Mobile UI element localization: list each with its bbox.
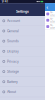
button[interactable]: Storage bbox=[0, 67, 45, 77]
staticText: Storage bbox=[7, 70, 19, 74]
button[interactable]: Sounds bbox=[0, 36, 45, 46]
staticText: Settings bbox=[16, 9, 29, 14]
button[interactable]: About bbox=[0, 87, 45, 97]
staticText: 9:41 bbox=[2, 0, 8, 3]
staticText: Display bbox=[7, 49, 19, 53]
staticText: Note bbox=[50, 17, 54, 23]
staticText: Privacy bbox=[7, 59, 19, 63]
button[interactable]: Battery bbox=[0, 77, 45, 87]
button[interactable]: Note bbox=[45, 24, 55, 30]
button[interactable]: Note bbox=[45, 17, 55, 24]
staticText: Sounds bbox=[7, 39, 19, 43]
staticText: Battery bbox=[7, 80, 18, 84]
staticText: ‹ bbox=[46, 4, 48, 10]
button[interactable]: Display bbox=[0, 46, 45, 56]
staticText: Note bbox=[50, 23, 54, 30]
staticText: About bbox=[7, 90, 16, 94]
button[interactable]: General bbox=[0, 26, 45, 36]
button[interactable]: Account bbox=[0, 16, 45, 26]
button[interactable]: Note bbox=[45, 11, 55, 17]
staticText: General bbox=[7, 29, 19, 33]
staticText: Note bbox=[50, 11, 54, 17]
button[interactable]: Privacy bbox=[0, 57, 45, 67]
staticText: Account bbox=[7, 19, 20, 23]
